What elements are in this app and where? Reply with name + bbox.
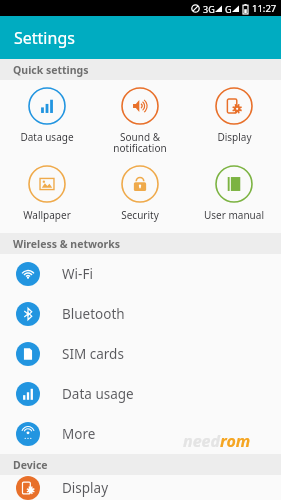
- staticText: Wi-Fi: [62, 265, 93, 283]
- button[interactable]: Display: [187, 85, 281, 146]
- staticText: User manual: [204, 208, 264, 222]
- staticText: Data usage: [20, 130, 74, 144]
- staticText: Display: [62, 479, 109, 497]
- staticText: Sound & notification: [113, 130, 167, 155]
- staticText: Quick settings: [13, 63, 89, 77]
- staticText: 11:27: [252, 2, 277, 15]
- staticText: Device: [13, 458, 48, 472]
- staticText: Bluetooth: [62, 305, 125, 323]
- button[interactable]: Wallpaper: [0, 163, 93, 224]
- staticText: 3G: [203, 3, 215, 15]
- staticText: SIM cards: [62, 345, 124, 363]
- button[interactable]: Data usage: [0, 85, 93, 146]
- button[interactable]: Wi-Fi: [0, 254, 281, 294]
- button[interactable]: Display: [0, 475, 281, 500]
- button[interactable]: Sound & notification: [93, 85, 187, 157]
- staticText: Settings: [14, 27, 75, 49]
- staticText: More: [62, 425, 96, 443]
- button[interactable]: Data usage: [0, 374, 281, 414]
- button[interactable]: SIM cards: [0, 334, 281, 374]
- staticText: Wireless & networks: [13, 237, 120, 251]
- staticText: G: [225, 3, 232, 15]
- button[interactable]: More: [0, 414, 281, 454]
- staticText: need: [183, 430, 220, 452]
- staticText: Data usage: [62, 385, 134, 403]
- staticText: Display: [217, 130, 252, 144]
- staticText: Wallpaper: [23, 208, 71, 222]
- button[interactable]: User manual: [187, 163, 281, 224]
- staticText: rom: [220, 430, 251, 452]
- button[interactable]: Bluetooth: [0, 294, 281, 334]
- button[interactable]: Security: [93, 163, 187, 224]
- staticText: Security: [121, 208, 159, 222]
